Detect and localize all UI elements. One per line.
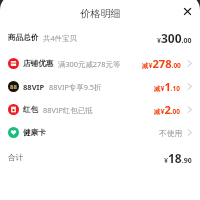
staticText: 商品总价 (8, 33, 39, 43)
staticText: 红包 (23, 105, 39, 115)
button[interactable]: 健康卡 (8, 122, 192, 143)
staticText: 共4件宝贝 (43, 33, 77, 43)
staticText: 合计 (8, 153, 24, 163)
staticText: 店铺优惠 (23, 59, 54, 69)
staticText: 减¥278.00 (142, 56, 181, 71)
button[interactable]: 88 (8, 76, 192, 97)
staticText: 健康卡 (23, 128, 46, 138)
staticText: 88VIP (23, 82, 45, 92)
staticText: 88VIP红包已抵 (43, 105, 93, 115)
staticText: 价格明细 (80, 7, 121, 20)
staticText: ¥300.00 (157, 30, 192, 46)
button[interactable]: 店铺优惠 (8, 53, 192, 74)
staticText: 满300元减278元等 (58, 59, 121, 69)
staticText: 减¥1.10 (154, 79, 181, 94)
staticText: 不使用 (159, 128, 183, 138)
staticText: 88VIP专享9.5折 (49, 82, 102, 92)
button[interactable]: Close (180, 4, 194, 18)
staticText: ¥18.90 (164, 150, 192, 166)
staticText: 88 (10, 83, 17, 91)
staticText: 减¥2.00 (154, 102, 181, 117)
button[interactable]: 红包 (8, 99, 192, 120)
